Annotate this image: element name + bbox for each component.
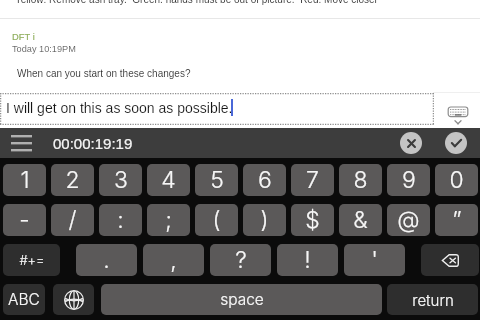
button[interactable]: 2 <box>51 164 94 196</box>
button[interactable]: ' <box>344 244 405 276</box>
staticText: 0 <box>449 166 464 194</box>
button[interactable]: & <box>339 204 382 236</box>
button[interactable]: , <box>143 244 204 276</box>
staticText: 9 <box>402 166 416 194</box>
button[interactable]: @ <box>387 204 430 236</box>
button[interactable]: Menu <box>0 128 43 158</box>
button[interactable]: 5 <box>195 164 238 196</box>
button[interactable]: ! <box>277 244 338 276</box>
staticText: When can you start on these changes? <box>17 68 191 79</box>
button[interactable]: ? <box>210 244 271 276</box>
staticText: ; <box>165 206 172 234</box>
staticText: , <box>170 246 177 274</box>
staticText: : <box>117 206 124 234</box>
button[interactable]: : <box>99 204 142 236</box>
button[interactable]: 9 <box>387 164 430 196</box>
button[interactable]: 8 <box>339 164 382 196</box>
button[interactable]: . <box>76 244 137 276</box>
button[interactable]: ” <box>435 204 478 236</box>
button[interactable]: / <box>51 204 94 236</box>
staticText: ” <box>452 206 462 234</box>
button[interactable]: 3 <box>99 164 142 196</box>
button[interactable]: ) <box>243 204 286 236</box>
staticText: ( <box>212 206 221 234</box>
staticText: $ <box>305 206 320 234</box>
button[interactable]: 7 <box>291 164 334 196</box>
button[interactable]: ; <box>147 204 190 236</box>
staticText: / <box>68 206 77 234</box>
button[interactable]: Confirm <box>445 132 467 154</box>
staticText: 2 <box>65 166 80 194</box>
staticText: . <box>103 246 110 274</box>
button[interactable]: 4 <box>147 164 190 196</box>
button[interactable]: #+= <box>3 244 60 276</box>
staticText: Yellow: Remove ash tray. Green: hands mu… <box>15 0 378 5</box>
button[interactable]: Hide keyboard <box>442 100 474 127</box>
staticText: 8 <box>353 166 368 194</box>
staticText: Today 10:19PM <box>12 44 76 54</box>
button[interactable]: 0 <box>435 164 478 196</box>
button[interactable]: Delete <box>421 244 479 276</box>
staticText: 3 <box>114 166 128 194</box>
staticText: 00:00:19:19 <box>53 135 133 152</box>
staticText: 7 <box>306 166 319 194</box>
button[interactable]: ABC <box>3 284 45 315</box>
staticText: DFT i <box>12 31 35 42</box>
button[interactable]: 6 <box>243 164 286 196</box>
button[interactable]: $ <box>291 204 334 236</box>
staticText: space <box>220 290 264 309</box>
button[interactable]: return <box>387 284 478 315</box>
button[interactable]: ( <box>195 204 238 236</box>
staticText: 1 <box>20 166 30 194</box>
button[interactable]: space <box>101 284 382 315</box>
staticText: 6 <box>258 166 272 194</box>
button[interactable]: 1 <box>3 164 46 196</box>
staticText: ) <box>260 206 269 234</box>
button[interactable]: - <box>3 204 46 236</box>
button[interactable]: Cancel <box>400 132 422 154</box>
staticText: #+= <box>19 252 45 268</box>
staticText: 5 <box>210 166 224 194</box>
staticText: return <box>412 291 454 309</box>
staticText: ? <box>235 246 247 274</box>
staticText: 4 <box>161 166 176 194</box>
staticText: ' <box>371 246 378 274</box>
button[interactable]: Change language <box>53 284 94 315</box>
staticText: & <box>353 206 368 234</box>
staticText: ABC <box>8 290 40 309</box>
staticText: @ <box>397 206 420 234</box>
staticText: ! <box>304 246 311 274</box>
staticText: I will get on this as soon as possible. <box>6 100 233 116</box>
button[interactable]: I will get on this as soon as possible. <box>1 93 433 124</box>
staticText: - <box>19 206 30 234</box>
